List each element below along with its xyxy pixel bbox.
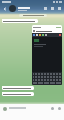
button[interactable]	[19, 14, 47, 17]
button[interactable]: Attach	[50, 106, 55, 111]
button[interactable]	[32, 25, 62, 85]
button[interactable]: Camera	[57, 106, 62, 111]
button[interactable]: Video call	[42, 5, 49, 12]
button[interactable]: Back	[1, 5, 9, 13]
button[interactable]	[2, 19, 38, 23]
button[interactable]: More options	[56, 5, 63, 12]
button[interactable]: Emoji	[2, 106, 7, 111]
button[interactable]	[2, 86, 34, 90]
button[interactable]: Contact photo	[9, 5, 16, 12]
button[interactable]	[2, 92, 34, 96]
button[interactable]: Call	[49, 5, 56, 12]
